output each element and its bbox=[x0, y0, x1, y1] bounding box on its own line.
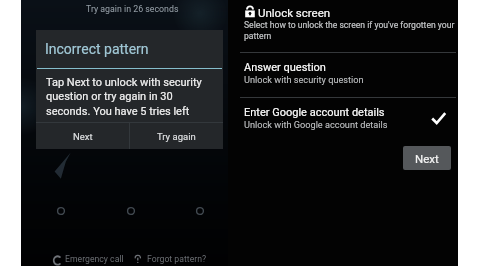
staticText: Tap Next to unlock with security questio… bbox=[46, 76, 213, 118]
staticText: Unlock with security question bbox=[244, 74, 364, 85]
staticText: Answer question bbox=[244, 61, 326, 74]
staticText: Next bbox=[415, 152, 439, 165]
button[interactable]: Forgot pattern? bbox=[133, 252, 207, 266]
staticText: Select how to unlock the screen if you'v… bbox=[244, 20, 458, 41]
staticText: Unlock with Google account details bbox=[244, 119, 388, 130]
other: Locked bbox=[244, 6, 256, 18]
staticText: Try again bbox=[157, 131, 196, 142]
button[interactable]: Try again bbox=[130, 123, 223, 149]
staticText: Incorrect pattern bbox=[45, 41, 149, 57]
button[interactable]: Answer question bbox=[228, 51, 458, 95]
staticText: Forgot pattern? bbox=[147, 254, 207, 264]
staticText: Try again in 26 seconds bbox=[86, 4, 179, 14]
button[interactable]: Enter Google account details bbox=[228, 96, 458, 140]
staticText: Enter Google account details bbox=[244, 106, 385, 119]
button[interactable]: Next bbox=[36, 123, 129, 149]
staticText: Unlock screen bbox=[258, 6, 331, 19]
staticText: Next bbox=[73, 131, 93, 142]
button[interactable]: Next bbox=[403, 146, 451, 170]
staticText: Emergency call bbox=[65, 254, 124, 264]
button[interactable]: Emergency call bbox=[52, 252, 124, 266]
